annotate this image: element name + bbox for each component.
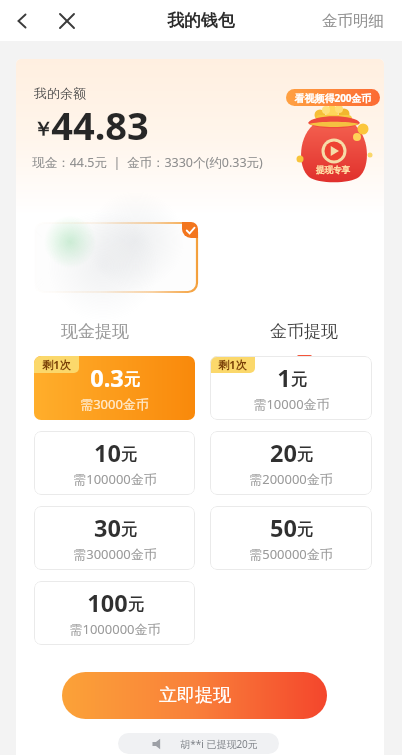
staticText: ￥ [33,117,53,142]
button[interactable]: 胡**i 已提现20元 [118,733,279,754]
staticText: 100 [87,587,128,619]
staticText: 元 [297,520,313,540]
staticText: 20 [270,437,297,469]
staticText: 立即提现 [159,684,231,707]
staticText: 需3000金币 [80,395,149,413]
staticText: 现金提现 [61,321,129,342]
button[interactable]: 金币提现 [254,321,354,361]
button[interactable]: 100 [34,581,195,645]
staticText: 0.3 [90,362,124,394]
staticText: 我的余额 [34,85,86,101]
staticText: 胡**i 已提现20元 [180,737,258,751]
button[interactable]: 30 [34,506,195,570]
staticText: 需500000金币 [249,545,333,563]
button[interactable]: 0.3 [34,356,195,420]
staticText: 需200000金币 [249,470,333,488]
staticText: 剩1次 [218,357,247,372]
staticText: 元 [121,520,137,540]
staticText: 44.83 [51,99,149,151]
button[interactable]: 10 [34,431,195,495]
button[interactable]: 提现方式 [34,222,198,293]
button[interactable]: Back [5,4,39,38]
staticText: 50 [270,512,297,544]
button[interactable]: 金币明细 [322,0,384,41]
button[interactable]: 50 [210,506,372,570]
staticText: 元 [121,445,137,465]
staticText: 提现专享 [316,165,350,176]
staticText: 需300000金币 [73,545,157,563]
staticText: 1 [277,362,291,394]
staticText: 我的钱包 [167,10,235,31]
staticText: 现金：44.5元 | 金币：3330个(约0.33元) [32,154,263,171]
button[interactable]: Close [50,4,84,38]
staticText: 金币明细 [322,11,384,31]
staticText: 元 [128,595,144,615]
button[interactable]: 看视频得200金币 提现专享 [284,89,382,199]
staticText: 金币提现 [270,321,338,342]
staticText: 需10000金币 [253,395,330,413]
staticText: 元 [124,370,140,390]
staticText: 30 [94,512,121,544]
button[interactable]: 20 [210,431,372,495]
staticText: 元 [297,445,313,465]
staticText: 看视频得200金币 [294,91,372,105]
button[interactable]: 1 [210,356,372,420]
staticText: 需100000金币 [73,470,157,488]
staticText: 剩1次 [42,357,71,372]
staticText: 10 [94,437,121,469]
button[interactable]: 现金提现 [45,321,145,361]
staticText: 元 [291,370,307,390]
button[interactable]: 立即提现 [62,672,327,719]
staticText: 需1000000金币 [69,620,161,638]
